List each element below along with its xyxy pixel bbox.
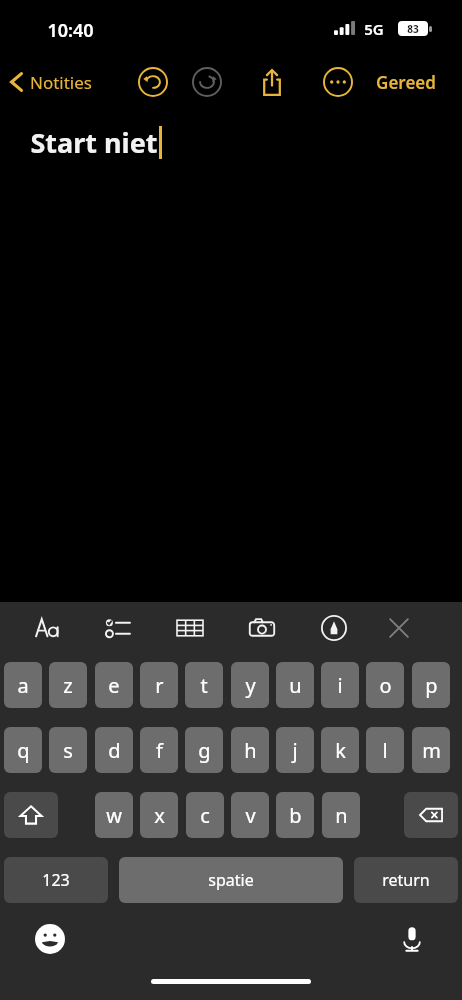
button[interactable]: Dictation: [394, 921, 430, 957]
staticText: f: [156, 737, 163, 764]
staticText: u: [289, 672, 302, 699]
button[interactable]: Share: [252, 62, 292, 102]
staticText: a: [17, 672, 29, 699]
button[interactable]: d: [95, 727, 133, 773]
staticText: w: [106, 802, 122, 829]
staticText: y: [245, 672, 256, 699]
staticText: l: [382, 737, 388, 764]
button[interactable]: f: [140, 727, 178, 773]
staticText: e: [108, 672, 120, 699]
button[interactable]: Gereed: [370, 62, 442, 102]
staticText: 123: [42, 869, 70, 891]
staticText: return: [382, 869, 430, 891]
staticText: p: [425, 672, 438, 699]
staticText: o: [379, 672, 392, 699]
staticText: m: [422, 737, 441, 764]
button[interactable]: spatie: [119, 857, 343, 903]
button[interactable]: o: [366, 662, 404, 708]
button[interactable]: m: [412, 727, 450, 773]
button[interactable]: a: [4, 662, 42, 708]
button[interactable]: c: [186, 792, 224, 838]
staticText: Gereed: [376, 71, 436, 94]
button[interactable]: Shift: [4, 792, 58, 838]
staticText: h: [244, 737, 257, 764]
button[interactable]: x: [140, 792, 178, 838]
button[interactable]: z: [49, 662, 87, 708]
button[interactable]: Markup: [316, 610, 352, 646]
button[interactable]: Notities: [4, 62, 98, 102]
button[interactable]: Close keyboard: [381, 610, 417, 646]
staticText: x: [154, 802, 165, 829]
button[interactable]: Table: [172, 610, 208, 646]
staticText: 83: [407, 22, 419, 36]
staticText: n: [335, 802, 348, 829]
button[interactable]: Checklist: [100, 610, 136, 646]
button[interactable]: u: [276, 662, 314, 708]
button[interactable]: w: [95, 792, 133, 838]
button[interactable]: j: [276, 727, 314, 773]
button[interactable]: s: [49, 727, 87, 773]
button[interactable]: q: [4, 727, 42, 773]
button[interactable]: Emoji: [32, 921, 68, 957]
button[interactable]: l: [366, 727, 404, 773]
staticText: Notities: [30, 71, 92, 94]
staticText: v: [245, 802, 256, 829]
button[interactable]: n: [322, 792, 360, 838]
staticText: t: [200, 672, 208, 699]
button[interactable]: t: [185, 662, 223, 708]
button[interactable]: g: [185, 727, 223, 773]
staticText: c: [200, 802, 210, 829]
staticText: k: [335, 737, 346, 764]
button[interactable]: Backspace: [404, 792, 458, 838]
staticText: i: [337, 672, 343, 699]
staticText: z: [63, 672, 73, 699]
button[interactable]: Text format: [30, 610, 66, 646]
button[interactable]: e: [95, 662, 133, 708]
staticText: r: [155, 672, 164, 699]
staticText: j: [292, 737, 298, 764]
staticText: Start niet: [30, 124, 158, 161]
button[interactable]: k: [321, 727, 359, 773]
button[interactable]: 123: [4, 857, 108, 903]
staticText: 5G: [364, 19, 384, 39]
staticText: d: [108, 737, 121, 764]
staticText: q: [17, 737, 30, 764]
button[interactable]: b: [276, 792, 314, 838]
staticText: g: [198, 737, 211, 764]
staticText: spatie: [208, 869, 254, 891]
button[interactable]: More options: [318, 62, 358, 102]
staticText: 10:40: [47, 18, 94, 43]
button[interactable]: return: [354, 857, 458, 903]
staticText: s: [63, 737, 73, 764]
button[interactable]: y: [231, 662, 269, 708]
button[interactable]: Undo: [133, 62, 173, 102]
button[interactable]: h: [231, 727, 269, 773]
button[interactable]: i: [321, 662, 359, 708]
button[interactable]: r: [140, 662, 178, 708]
staticText: b: [289, 802, 302, 829]
button[interactable]: Camera: [244, 610, 280, 646]
button[interactable]: v: [231, 792, 269, 838]
button[interactable]: p: [412, 662, 450, 708]
button[interactable]: Redo: [187, 62, 227, 102]
